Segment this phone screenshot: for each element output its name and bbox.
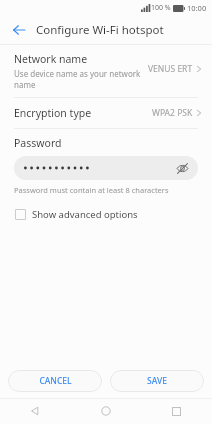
staticText: 10:00 bbox=[187, 3, 207, 13]
staticText: Password must contain at least 8 charact… bbox=[14, 185, 169, 195]
staticText: Password bbox=[14, 136, 62, 150]
staticText: Network name bbox=[14, 52, 88, 66]
button[interactable]: Home bbox=[70, 398, 141, 424]
button[interactable]: SAVE bbox=[110, 370, 204, 392]
button[interactable]: Back bbox=[8, 19, 30, 41]
staticText: SAVE bbox=[147, 375, 167, 387]
button[interactable]: Back bbox=[0, 398, 70, 424]
staticText: WPA2 PSK bbox=[152, 107, 193, 119]
button[interactable]: Encryption type bbox=[0, 98, 212, 128]
staticText: Show advanced options bbox=[32, 208, 138, 221]
staticText: VENUS ERT bbox=[148, 63, 193, 75]
staticText: CANCEL bbox=[39, 375, 72, 387]
button[interactable]: Network name bbox=[0, 45, 212, 97]
button[interactable]: Show password bbox=[14, 156, 198, 180]
staticText: 100 % bbox=[151, 3, 171, 13]
staticText: Encryption type bbox=[14, 106, 152, 120]
button[interactable]: Show advanced options bbox=[14, 205, 139, 224]
button[interactable]: Show password bbox=[174, 160, 190, 176]
button[interactable]: Recent apps bbox=[141, 398, 212, 424]
staticText: Configure Wi-Fi hotspot bbox=[36, 22, 164, 38]
staticText: Use device name as your network name bbox=[14, 68, 144, 90]
button[interactable]: CANCEL bbox=[8, 370, 102, 392]
